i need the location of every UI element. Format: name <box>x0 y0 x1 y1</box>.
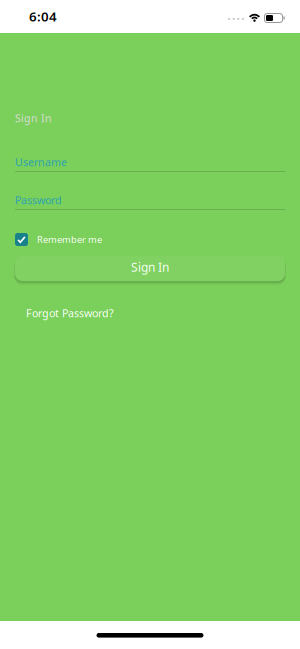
button[interactable]: Username <box>15 155 285 172</box>
button[interactable]: Password <box>15 193 285 210</box>
staticText: Remember me <box>37 233 102 246</box>
button[interactable]: Forgot Password? <box>26 306 114 320</box>
staticText: Sign In <box>131 259 169 275</box>
staticText: 6:04 <box>29 7 57 25</box>
staticText: Forgot Password? <box>26 306 114 320</box>
button[interactable]: Sign In <box>15 256 285 281</box>
staticText: Sign In <box>15 111 52 125</box>
button[interactable]: Remember me <box>15 233 102 246</box>
staticText: Username <box>15 155 67 169</box>
staticText: Password <box>15 193 62 207</box>
